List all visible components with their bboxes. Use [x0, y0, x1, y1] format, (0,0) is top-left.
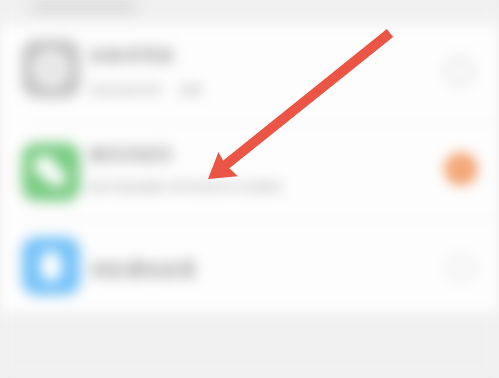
staticText: 设备管理器 [89, 45, 174, 66]
other: Annotation arrow [0, 0, 499, 378]
button[interactable]: Device management [0, 24, 499, 123]
staticText: 微信消息区 [89, 144, 174, 165]
button[interactable]: Message settings [0, 123, 499, 219]
staticText: 设置 [178, 82, 202, 97]
button[interactable]: Notification settings [0, 219, 499, 313]
staticText: 消息通知设置 [89, 259, 197, 282]
